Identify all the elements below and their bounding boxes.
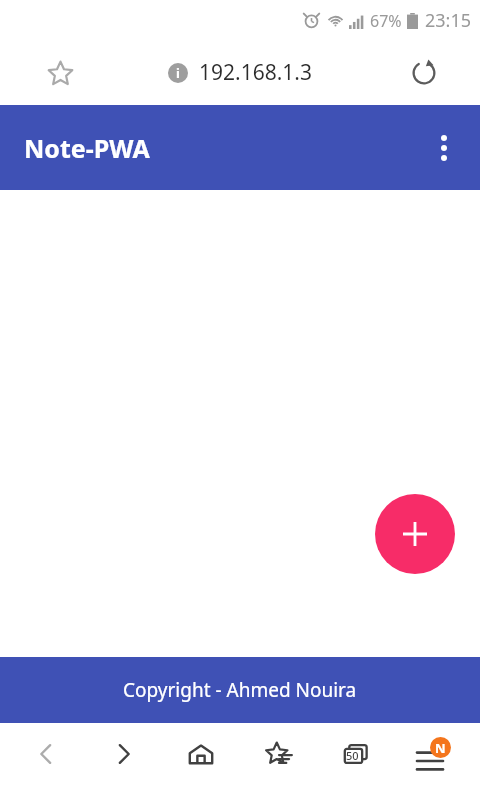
staticText: 67% xyxy=(370,10,402,32)
button[interactable]: Add note xyxy=(375,494,455,574)
staticText: 23:15 xyxy=(425,8,472,33)
button[interactable]: Copyright - Ahmed Nouira xyxy=(0,657,480,723)
staticText: 192.168.1.3 xyxy=(199,58,312,87)
button[interactable]: Back xyxy=(15,723,77,785)
staticText: 50 xyxy=(346,748,359,763)
button[interactable]: More options xyxy=(422,126,466,170)
button[interactable]: Bookmark page xyxy=(36,49,84,97)
button[interactable]: Tabs, 50 open xyxy=(325,723,387,785)
button[interactable]: Site information xyxy=(168,63,188,83)
staticText: i xyxy=(176,64,180,82)
button[interactable]: Reload xyxy=(400,49,448,97)
button[interactable]: Bookmarks xyxy=(248,723,310,785)
button[interactable]: Forward xyxy=(93,723,155,785)
staticText: N xyxy=(435,739,446,757)
staticText: Note-PWA xyxy=(24,131,150,165)
button[interactable]: Menu xyxy=(403,723,465,785)
button[interactable]: Home xyxy=(170,723,232,785)
staticText: Copyright - Ahmed Nouira xyxy=(123,677,357,703)
